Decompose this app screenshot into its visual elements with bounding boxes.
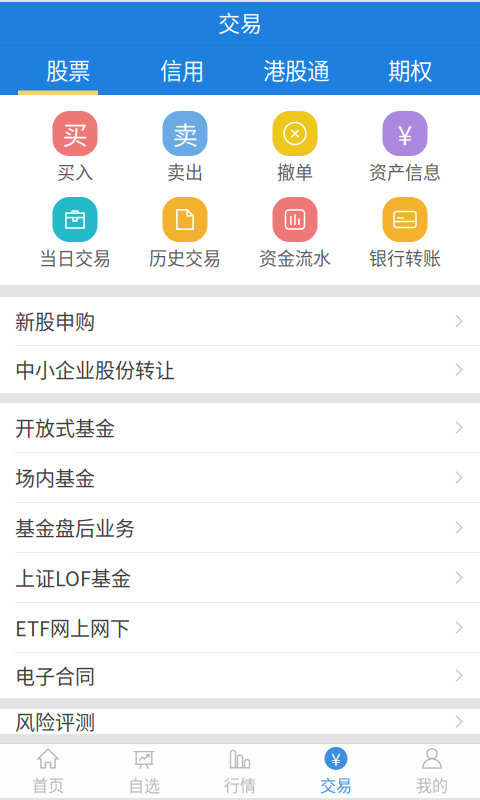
button[interactable]: 历史交易: [130, 197, 240, 267]
staticText: ¥: [397, 114, 412, 153]
staticText: 新股申购: [15, 306, 95, 335]
button[interactable]: 港股通: [239, 47, 353, 91]
button[interactable]: 银行转账: [350, 197, 460, 267]
button[interactable]: 自选: [96, 744, 192, 798]
staticText: 当日交易: [39, 244, 111, 271]
staticText: ¥: [331, 746, 341, 771]
staticText: 自选: [128, 773, 160, 796]
button[interactable]: 基金盘后业务: [0, 503, 480, 552]
staticText: 股票: [46, 53, 90, 86]
button[interactable]: 上证LOF基金: [0, 553, 480, 602]
staticText: 买: [62, 115, 87, 152]
button[interactable]: 首页: [0, 744, 96, 798]
button[interactable]: 当日交易: [20, 197, 130, 267]
staticText: 历史交易: [149, 244, 221, 271]
button[interactable]: ¥: [288, 744, 384, 798]
staticText: 行情: [224, 773, 256, 796]
staticText: 资产信息: [369, 158, 441, 185]
button[interactable]: 行情: [192, 744, 288, 798]
button[interactable]: 风险评测: [0, 709, 480, 734]
staticText: 场内基金: [15, 463, 95, 492]
staticText: 电子合同: [15, 661, 95, 690]
staticText: 上证LOF基金: [15, 563, 131, 592]
staticText: 资金流水: [259, 244, 331, 271]
button[interactable]: 电子合同: [0, 653, 480, 698]
button[interactable]: 场内基金: [0, 453, 480, 502]
staticText: 开放式基金: [15, 413, 115, 442]
staticText: 卖出: [167, 158, 203, 185]
button[interactable]: 我的: [384, 744, 480, 798]
button[interactable]: 卖出: [130, 111, 240, 181]
staticText: 中小企业股份转让: [15, 355, 175, 384]
button[interactable]: 股票: [11, 47, 125, 91]
button[interactable]: 信用: [125, 47, 239, 91]
button[interactable]: 资金流水: [240, 197, 350, 267]
button[interactable]: 期权: [353, 47, 467, 91]
staticText: 基金盘后业务: [15, 513, 135, 542]
staticText: 首页: [32, 773, 64, 796]
button[interactable]: ETF网上网下: [0, 603, 480, 652]
button[interactable]: 买入: [20, 111, 130, 181]
button[interactable]: 资产信息: [350, 111, 460, 181]
staticText: 信用: [160, 53, 204, 86]
button[interactable]: 新股申购: [0, 297, 480, 345]
staticText: 银行转账: [369, 244, 441, 271]
button[interactable]: 开放式基金: [0, 403, 480, 452]
staticText: 交易: [320, 773, 352, 796]
staticText: 风险评测: [15, 707, 95, 736]
staticText: 买入: [57, 158, 93, 185]
staticText: 港股通: [263, 53, 329, 86]
staticText: ETF网上网下: [15, 613, 130, 642]
staticText: 卖: [172, 115, 197, 152]
staticText: 交易: [218, 6, 262, 38]
staticText: 我的: [416, 773, 448, 796]
button[interactable]: 撤单: [240, 111, 350, 181]
staticText: 期权: [388, 53, 432, 86]
staticText: 撤单: [277, 158, 313, 185]
button[interactable]: 中小企业股份转让: [0, 346, 480, 393]
